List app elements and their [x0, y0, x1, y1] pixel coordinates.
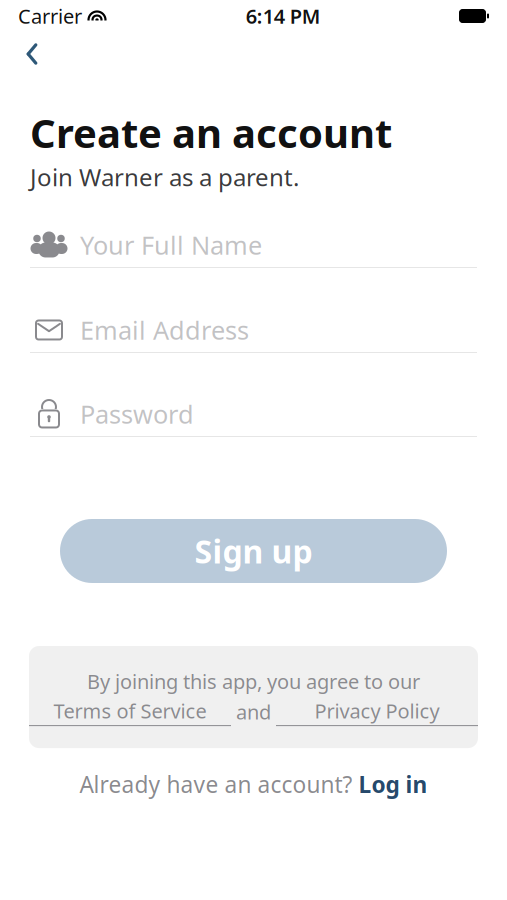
button[interactable]: Already have an account? [0, 764, 507, 804]
staticText: Password [80, 397, 194, 431]
button[interactable]: Back [10, 32, 54, 76]
button[interactable]: Terms of Service [29, 697, 231, 726]
staticText: Already have an account? [79, 769, 352, 799]
staticText: Create an account [30, 106, 392, 159]
staticText: Log in [358, 769, 427, 799]
staticText: Email Address [80, 313, 249, 347]
staticText: Privacy Policy [314, 697, 439, 724]
staticText: Terms of Service [53, 697, 206, 724]
staticText: By joining this app, you agree to our [87, 668, 420, 695]
button[interactable]: Sign up [60, 519, 447, 583]
button[interactable]: Privacy Policy [276, 697, 478, 726]
staticText: and [231, 698, 276, 725]
staticText: Sign up [194, 530, 312, 572]
staticText: Your Full Name [80, 228, 262, 262]
staticText: Carrier [18, 3, 82, 29]
staticText: Join Warner as a parent. [30, 161, 299, 193]
staticText: 6:14 PM [246, 3, 321, 29]
